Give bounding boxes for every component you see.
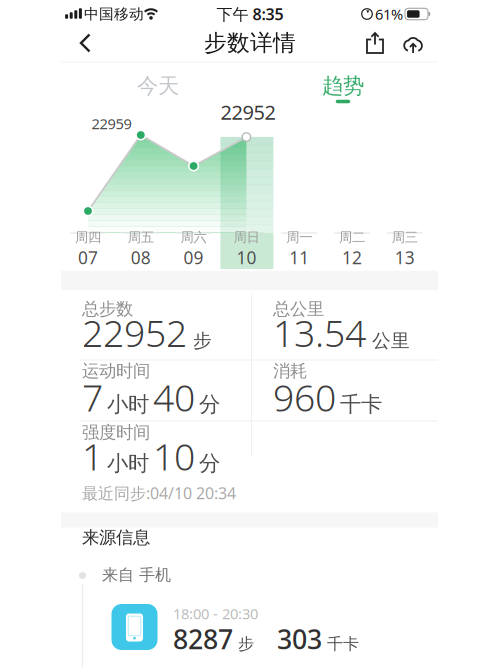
staticText: 18:00 - 20:30 [173,604,258,623]
staticText: 今天 [137,73,179,99]
staticText: 分 [199,391,220,417]
staticText: 步 [238,634,254,654]
staticText: 8287 [173,621,233,657]
staticText: 下午 8:35 [216,3,283,25]
staticText: 09 [184,246,204,269]
staticText: 小时 [107,391,149,417]
staticText: 消耗 [273,360,307,382]
staticText: 周二 [339,229,365,245]
staticText: 来源信息 [82,527,150,548]
staticText: 1 [82,431,103,481]
staticText: 趋势 [322,73,364,99]
staticText: 千卡 [327,634,359,654]
staticText: 12 [342,246,362,269]
staticText: 40 [153,372,195,422]
button[interactable]: 18:00 - 20:30 [95,597,445,657]
button[interactable]: 周一 [273,228,326,270]
staticText: 千卡 [340,391,382,417]
staticText: 周日 [233,229,259,245]
button[interactable] [401,32,425,54]
staticText: 强度时间 [82,422,150,443]
staticText: 最近同步:04/10 20:34 [82,482,236,504]
staticText: 小时 [107,450,149,476]
staticText: 13.54 [273,308,366,357]
staticText: 303 [277,621,322,657]
staticText: 08 [131,246,151,269]
staticText: 运动时间 [82,360,150,382]
staticText: 公里 [372,329,410,352]
staticText: 周一 [286,229,312,245]
staticText: 10 [236,246,256,269]
button[interactable]: 周二 [325,228,378,270]
staticText: 中国移动 [84,5,144,23]
staticText: 13 [395,246,415,269]
staticText: 步数详情 [204,29,296,57]
button[interactable] [366,32,384,54]
staticText: 10 [153,431,195,481]
staticText: 07 [78,246,98,269]
staticText: 来自 手机 [102,565,171,585]
staticText: 总公里 [273,298,324,320]
staticText: 周六 [181,229,207,245]
staticText: 11 [289,246,309,269]
button[interactable]: 趋势 [322,73,364,99]
button[interactable]: 周三 [378,228,431,270]
button[interactable]: 周六 [167,228,220,270]
staticText: 22952 [220,99,275,125]
staticText: 周四 [75,229,101,245]
staticText: 61% [375,4,403,24]
button[interactable]: 周日 [220,228,273,270]
staticText: 960 [273,372,336,422]
staticText: 总步数 [82,298,133,320]
staticText: 周五 [128,229,154,245]
button[interactable]: 周四 [61,228,114,270]
button[interactable]: 今天 [137,73,179,99]
staticText: 22959 [91,114,131,133]
staticText: 7 [82,372,103,422]
staticText: 周三 [392,229,418,245]
staticText: 分 [199,450,220,476]
button[interactable] [79,32,93,53]
staticText: 步 [193,329,212,352]
staticText: 22952 [82,308,187,357]
button[interactable]: 周五 [114,228,167,270]
